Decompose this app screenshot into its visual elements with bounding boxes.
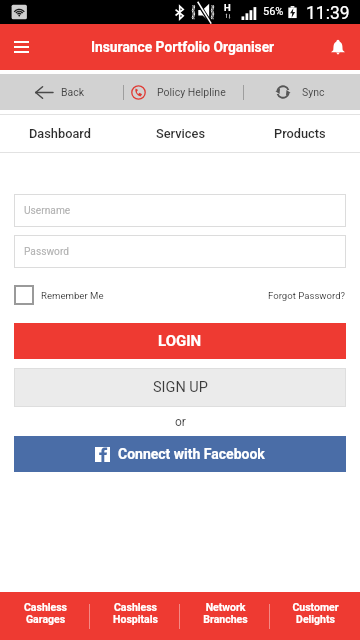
staticText: Dashboard <box>29 126 91 141</box>
button[interactable]: Products <box>240 115 360 152</box>
button[interactable]: Remember Me <box>14 285 104 305</box>
staticText: Forgot Password? <box>268 290 346 301</box>
button[interactable]: LOGIN <box>14 323 346 359</box>
staticText: Cashless Garages <box>24 601 67 626</box>
staticText: 11:39 <box>306 3 350 24</box>
button[interactable]: Network Branches <box>180 592 270 640</box>
button[interactable]: Customer Delights <box>270 592 360 640</box>
staticText: 56% <box>263 5 284 18</box>
button[interactable]: Back <box>35 74 85 110</box>
staticText: Cashless Hospitals <box>113 601 158 626</box>
button[interactable]: Connect with Facebook <box>14 436 346 472</box>
staticText: Username <box>24 205 71 217</box>
staticText: H <box>224 2 231 13</box>
staticText: Password <box>24 246 69 258</box>
staticText: Back <box>61 86 85 98</box>
staticText: Products <box>274 126 326 141</box>
staticText: or <box>175 415 186 429</box>
button[interactable]: Forgot Password? <box>268 285 346 305</box>
button[interactable]: Cashless Hospitals <box>90 592 180 640</box>
button[interactable]: Notifications <box>323 32 353 62</box>
button[interactable]: Username <box>14 194 346 227</box>
staticText: Network Branches <box>203 601 248 626</box>
button[interactable]: Cashless Garages <box>0 592 90 640</box>
staticText: Policy Helpline <box>157 86 226 98</box>
staticText: Remember Me <box>41 290 104 301</box>
button[interactable]: Sync <box>275 74 325 110</box>
button[interactable]: Open navigation menu <box>5 31 37 63</box>
staticText: LOGIN <box>158 332 202 350</box>
staticText: Customer Delights <box>292 601 339 626</box>
staticText: Sync <box>302 86 325 98</box>
staticText: Connect with Facebook <box>118 446 265 462</box>
staticText: SIGN UP <box>153 379 208 396</box>
button[interactable]: Services <box>120 115 240 152</box>
staticText: Insurance Portfolio Organiser <box>91 39 275 55</box>
button[interactable]: Dashboard <box>0 115 120 152</box>
button[interactable]: Password <box>14 235 346 268</box>
button[interactable]: SIGN UP <box>14 368 346 407</box>
staticText: Services <box>156 126 205 141</box>
button[interactable]: Policy Helpline <box>131 74 226 110</box>
